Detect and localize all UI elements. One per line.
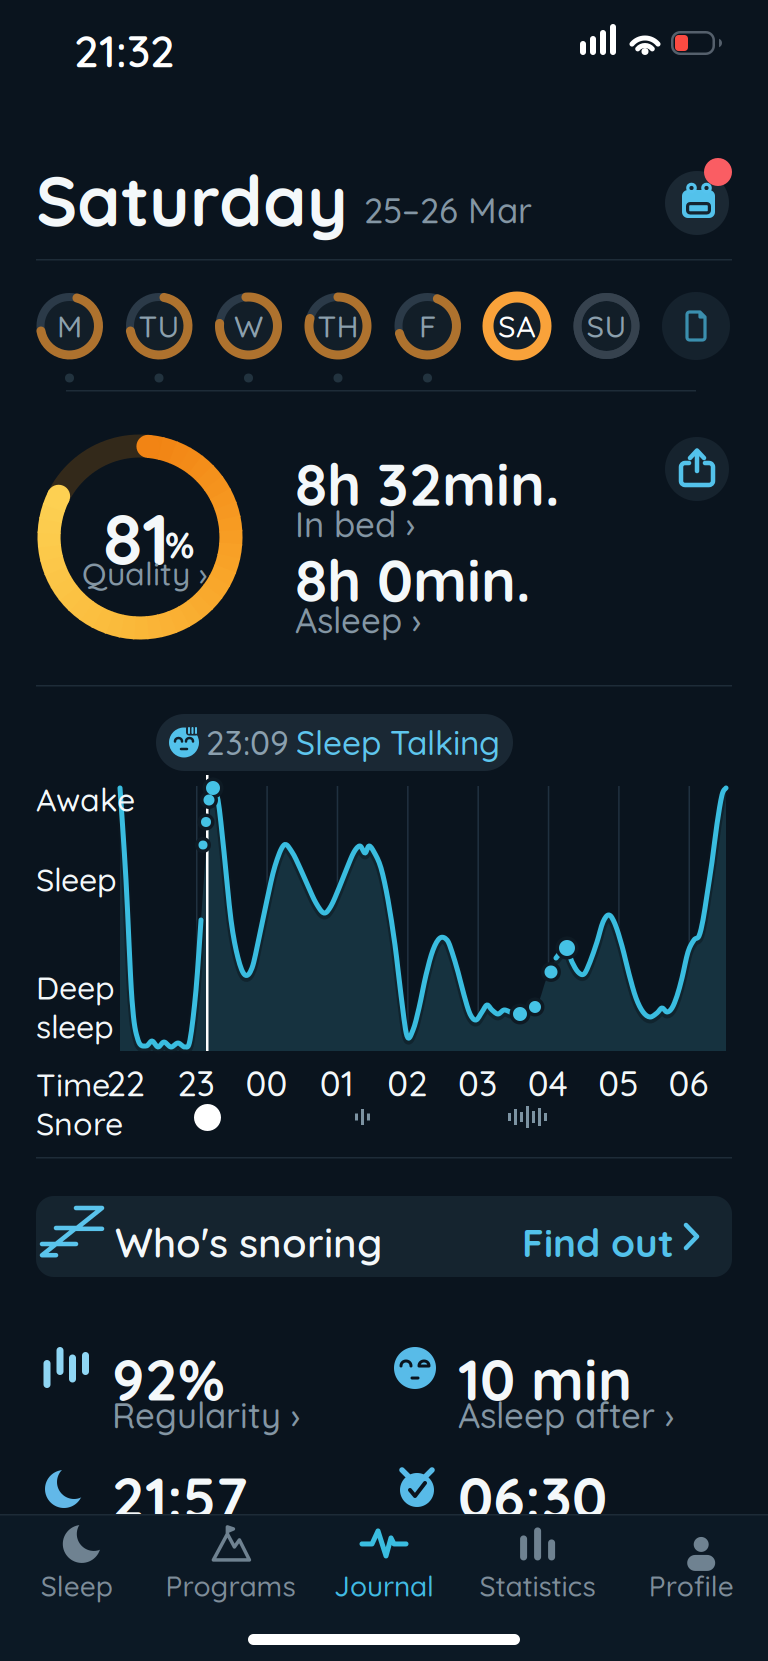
button[interactable]: TU	[125, 292, 193, 360]
staticText: 00	[245, 1062, 287, 1104]
staticText: In bed ›	[295, 503, 416, 545]
staticText: Find out	[522, 1219, 674, 1266]
staticText: SA	[498, 307, 536, 345]
button[interactable]: Programs	[155, 1522, 305, 1606]
staticText: 22	[107, 1062, 145, 1104]
button[interactable]: SA	[483, 292, 551, 360]
staticText: 06	[669, 1062, 709, 1104]
button[interactable]: Profile	[616, 1522, 766, 1606]
staticText: 05	[598, 1062, 638, 1104]
staticText: Statistics	[480, 1569, 596, 1603]
staticText: 8h 32min.	[295, 448, 560, 519]
staticText: 06:30	[458, 1462, 607, 1532]
button[interactable]: SU	[572, 292, 640, 360]
button[interactable]: Statistics	[463, 1522, 613, 1606]
button[interactable]: W	[214, 292, 282, 360]
button[interactable]: M	[35, 292, 103, 360]
staticText: Who's snoring	[115, 1218, 382, 1267]
staticText: Asleep ›	[295, 599, 422, 641]
staticText: Journal	[334, 1569, 434, 1603]
button[interactable]: F	[393, 292, 461, 360]
staticText: 81	[103, 494, 170, 582]
staticText: Sleep Talking	[296, 722, 500, 763]
staticText: Regularity ›	[112, 1394, 301, 1436]
staticText: 23	[178, 1062, 215, 1104]
button[interactable]: Sleep	[2, 1522, 152, 1606]
staticText: Sleep	[36, 860, 117, 899]
staticText: %	[165, 523, 194, 567]
staticText: SU	[586, 307, 626, 345]
button[interactable]: Regularity ›	[112, 1394, 301, 1436]
staticText: Time	[36, 1065, 110, 1104]
button[interactable]: 23:09	[156, 714, 513, 771]
staticText: 25–26 Mar	[364, 189, 532, 231]
staticText: TU	[138, 307, 179, 345]
staticText: Asleep after ›	[458, 1394, 675, 1436]
button[interactable]	[665, 171, 729, 235]
staticText: 21:57	[112, 1462, 247, 1532]
button[interactable]: Journal	[309, 1522, 459, 1606]
staticText: Snore	[36, 1104, 123, 1143]
staticText: 02	[387, 1062, 427, 1104]
staticText: 8h 0min.	[295, 544, 531, 615]
staticText: 23:09	[206, 722, 289, 763]
button[interactable]: Asleep ›	[295, 599, 422, 641]
staticText: 21:32	[74, 24, 175, 78]
staticText: Quality ›	[82, 554, 208, 593]
staticText: Sleep	[41, 1569, 113, 1603]
button[interactable]	[665, 437, 729, 501]
staticText: M	[57, 307, 82, 345]
staticText: 10 min	[458, 1344, 632, 1414]
staticText: 92%	[112, 1344, 225, 1414]
button[interactable]: Who's snoring	[36, 1196, 732, 1277]
staticText: 01	[320, 1062, 354, 1104]
button[interactable]: Quality ›	[82, 554, 208, 593]
button[interactable]: Asleep after ›	[458, 1394, 675, 1436]
staticText: Saturday	[36, 158, 348, 242]
staticText: Programs	[165, 1569, 295, 1603]
staticText: Profile	[649, 1569, 734, 1603]
staticText: 03	[458, 1062, 497, 1104]
staticText: W	[234, 307, 263, 345]
button[interactable]	[662, 292, 730, 360]
staticText: F	[419, 307, 436, 345]
button[interactable]: In bed ›	[295, 503, 416, 545]
staticText: Deep sleep	[36, 968, 115, 1046]
staticText: TH	[317, 307, 358, 345]
staticText: 04	[528, 1062, 568, 1104]
button[interactable]: TH	[304, 292, 372, 360]
staticText: Awake	[36, 780, 135, 819]
